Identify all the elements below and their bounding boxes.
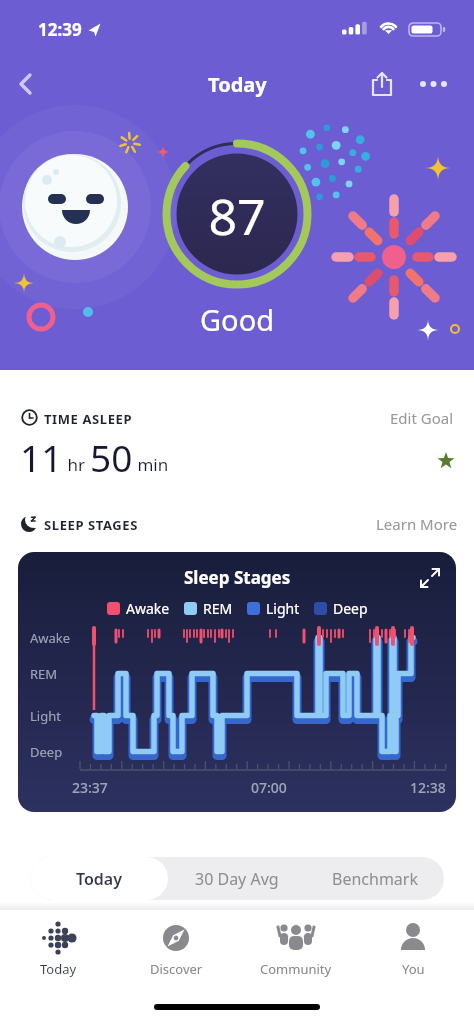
staticText: REM <box>30 665 58 683</box>
button[interactable]: Sleep Stages <box>18 552 456 812</box>
button[interactable]: Edit Goal <box>390 408 454 428</box>
staticText: Deep <box>30 743 63 761</box>
button[interactable]: Learn More <box>376 514 458 534</box>
staticText: 07:00 <box>251 778 287 797</box>
staticText: Benchmark <box>332 868 418 890</box>
staticText: Sleep Stages <box>184 566 291 589</box>
staticText: 11 <box>20 432 63 482</box>
staticText: Today <box>40 960 77 978</box>
button[interactable]: 30 Day Avg <box>168 857 306 900</box>
staticText: 30 Day Avg <box>195 868 279 890</box>
staticText: 87 <box>177 182 297 250</box>
button[interactable]: Community <box>250 910 342 980</box>
staticText: Deep <box>333 599 368 618</box>
button[interactable]: You <box>373 910 453 980</box>
staticText: 50 <box>90 432 133 482</box>
staticText: 23:37 <box>72 778 108 797</box>
button[interactable] <box>6 64 46 104</box>
staticText: Good <box>162 300 312 339</box>
button[interactable] <box>412 62 456 106</box>
staticText: 12:39 <box>38 18 82 41</box>
button[interactable]: Today <box>30 857 168 900</box>
button[interactable] <box>360 62 404 106</box>
staticText: TIME ASLEEP <box>44 410 133 428</box>
staticText: hr <box>63 453 90 476</box>
button[interactable]: Discover <box>136 910 216 980</box>
staticText: min <box>133 453 169 476</box>
staticText: You <box>402 960 425 978</box>
staticText: Light <box>30 707 61 725</box>
staticText: Discover <box>150 960 203 978</box>
staticText: Today <box>208 71 267 98</box>
button[interactable]: Benchmark <box>306 857 444 900</box>
staticText: Community <box>260 960 332 978</box>
staticText: Light <box>266 599 300 618</box>
staticText: REM <box>203 599 233 618</box>
button[interactable]: Today <box>18 910 98 980</box>
staticText: Awake <box>30 629 71 647</box>
staticText: Awake <box>126 599 170 618</box>
staticText: 12:38 <box>410 778 446 797</box>
staticText: Today <box>76 868 123 890</box>
staticText: SLEEP STAGES <box>44 516 138 534</box>
